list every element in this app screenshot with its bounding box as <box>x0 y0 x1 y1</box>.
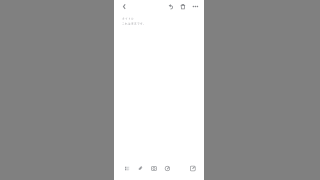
button[interactable]: Attach file <box>134 163 147 174</box>
button[interactable]: More <box>190 0 201 13</box>
button[interactable]: Take photo <box>147 163 161 174</box>
button[interactable]: Text formatting <box>120 163 134 174</box>
staticText: タイトル <box>122 17 134 20</box>
button[interactable]: Reply <box>165 0 177 13</box>
staticText: これは本文です。 <box>122 22 146 25</box>
button[interactable]: Compose <box>186 163 199 174</box>
button[interactable]: Markup <box>161 163 174 174</box>
button[interactable]: Delete <box>177 0 189 13</box>
button[interactable]: Back <box>118 0 130 13</box>
